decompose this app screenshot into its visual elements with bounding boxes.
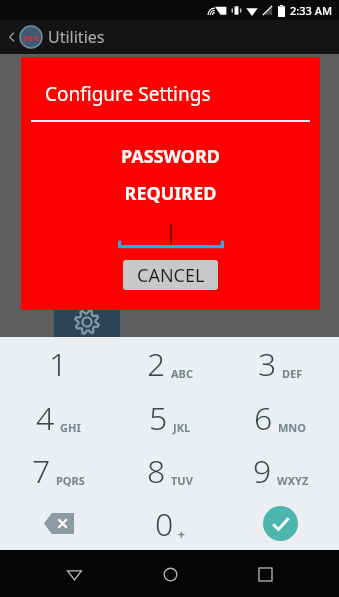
button[interactable]: Backspace: [3, 497, 114, 550]
staticText: CANCEL: [137, 263, 205, 288]
staticText: ABC: [171, 366, 193, 381]
staticText: REQUIRED: [21, 181, 320, 206]
button[interactable]: Home: [148, 552, 192, 596]
button[interactable]: CANCEL: [123, 260, 218, 290]
staticText: 7: [32, 449, 51, 493]
staticText: PQRS: [56, 473, 85, 488]
button[interactable]: 6: [225, 391, 336, 444]
staticText: 4: [36, 396, 55, 440]
staticText: 5: [149, 396, 168, 440]
staticText: Utilities: [48, 26, 105, 48]
button[interactable]: 3: [225, 337, 336, 391]
staticText: 0: [155, 502, 174, 546]
staticText: +: [178, 526, 185, 542]
staticText: MNO: [278, 420, 307, 435]
staticText: Configure Settings: [45, 81, 211, 107]
staticText: PASSWORD: [21, 144, 320, 169]
button[interactable]: 7: [3, 444, 114, 497]
staticText: 2:33 AM: [290, 3, 333, 18]
button[interactable]: Back: [5, 30, 19, 44]
button[interactable]: [21, 222, 320, 252]
button[interactable]: 8: [114, 444, 225, 497]
button[interactable]: Settings: [54, 307, 120, 337]
staticText: DEF: [282, 366, 303, 381]
staticText: 2: [147, 342, 166, 386]
button[interactable]: 5: [114, 391, 225, 444]
button[interactable]: Recents: [243, 552, 287, 596]
button[interactable]: 1: [3, 337, 114, 391]
button[interactable]: 9: [225, 444, 336, 497]
button[interactable]: 0: [114, 497, 225, 550]
staticText: emc: [23, 32, 40, 43]
staticText: 6: [254, 396, 273, 440]
staticText: GHI: [60, 420, 81, 435]
staticText: 1: [49, 342, 68, 386]
staticText: JKL: [173, 420, 191, 435]
staticText: TUV: [171, 473, 193, 488]
staticText: 9: [253, 449, 272, 493]
button[interactable]: Back: [52, 552, 96, 596]
button[interactable]: Confirm: [225, 497, 336, 550]
button[interactable]: 2: [114, 337, 225, 391]
button[interactable]: 4: [3, 391, 114, 444]
staticText: 8: [147, 449, 166, 493]
staticText: WXYZ: [277, 473, 309, 488]
staticText: 3: [258, 342, 277, 386]
